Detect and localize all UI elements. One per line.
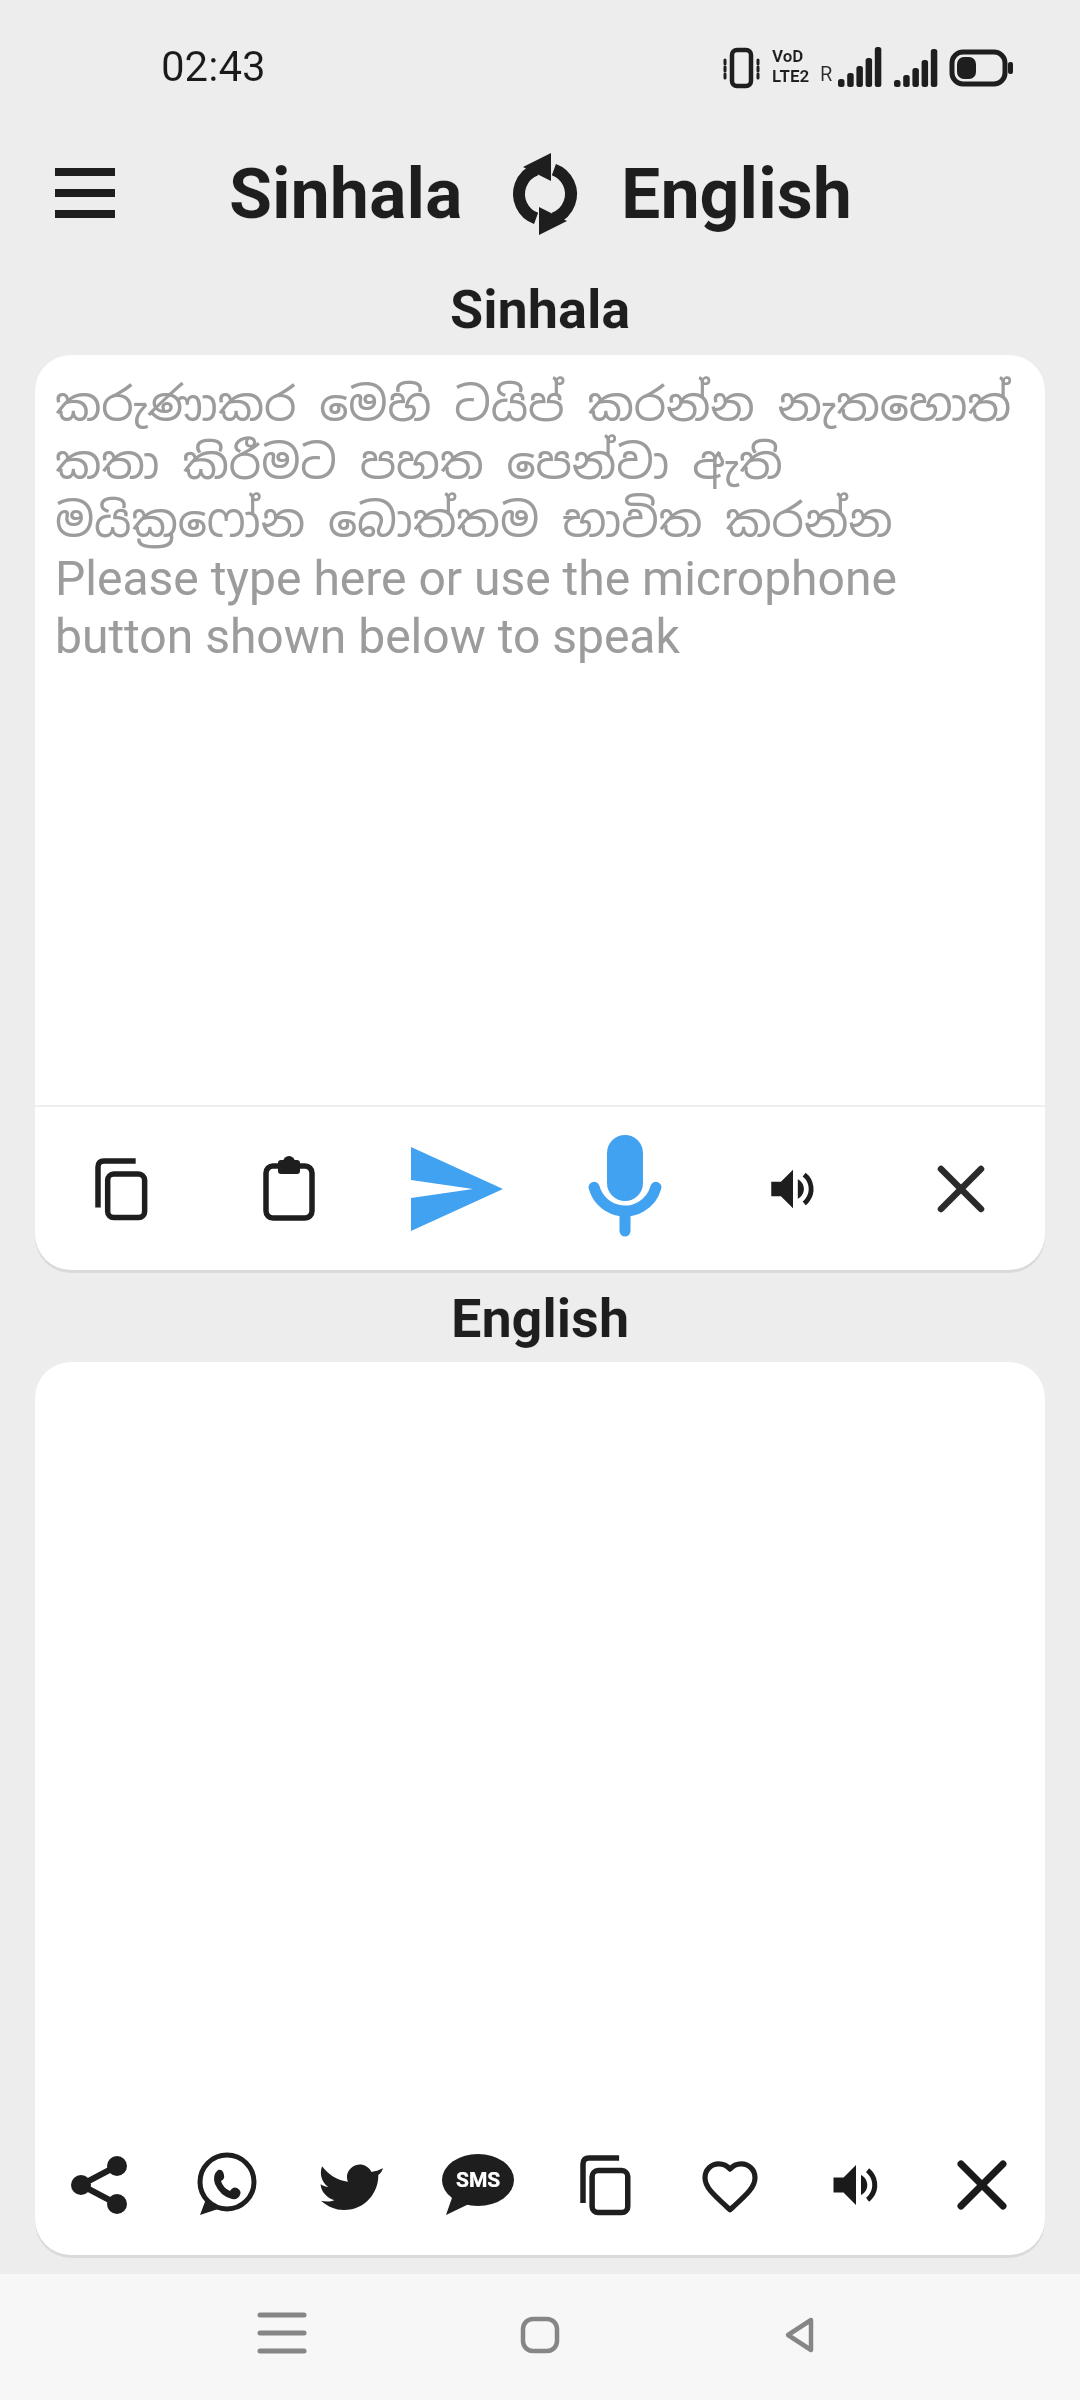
button[interactable]	[204, 1107, 373, 1270]
button[interactable]	[667, 2115, 793, 2255]
button[interactable]	[793, 2115, 919, 2255]
button[interactable]	[289, 2115, 415, 2255]
staticText: Sinhala	[450, 278, 631, 341]
button[interactable]	[55, 168, 115, 218]
staticText: කරුණාකර මෙහි ටයිප් කරන්න නැතහොත් කතා කිර…	[55, 374, 1012, 550]
button[interactable]: Sinhala	[229, 153, 463, 235]
button[interactable]	[509, 150, 581, 238]
staticText: English	[451, 1287, 630, 1350]
button[interactable]	[709, 1107, 877, 1270]
staticText: 02:43	[161, 42, 266, 91]
button[interactable]	[919, 2115, 1045, 2255]
button[interactable]	[373, 1107, 541, 1270]
button[interactable]	[162, 2115, 289, 2255]
button[interactable]	[877, 1107, 1045, 1270]
button[interactable]	[35, 2115, 162, 2255]
button[interactable]	[35, 1107, 204, 1270]
button[interactable]	[521, 2317, 559, 2353]
staticText: LTE2	[772, 66, 810, 86]
staticText: Please type here or use the microphone b…	[55, 550, 897, 665]
staticText: R	[820, 62, 833, 85]
button[interactable]	[781, 2317, 819, 2353]
button[interactable]	[541, 2115, 667, 2255]
button[interactable]	[260, 2313, 304, 2353]
button[interactable]: SMS	[415, 2115, 541, 2255]
staticText: SMS	[456, 2168, 501, 2193]
button[interactable]: English	[621, 153, 852, 235]
button[interactable]	[541, 1107, 709, 1270]
staticText: VoD	[772, 46, 804, 66]
